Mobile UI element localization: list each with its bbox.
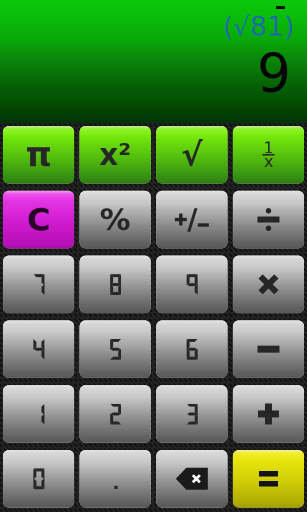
staticText: 1	[263, 139, 273, 157]
staticText: 9	[257, 42, 291, 104]
staticText: .	[114, 466, 116, 492]
button[interactable]: 2	[80, 385, 151, 443]
button[interactable]: 8	[80, 256, 151, 313]
button[interactable]	[233, 385, 304, 443]
button[interactable]: 4	[3, 320, 74, 378]
staticText: 3	[184, 401, 200, 427]
button[interactable]: π	[3, 126, 74, 183]
staticText: 0	[30, 466, 46, 492]
button[interactable]: x²	[80, 126, 151, 183]
staticText: 4	[30, 336, 46, 362]
button[interactable]: √	[156, 126, 227, 183]
staticText: 6	[184, 336, 200, 362]
button[interactable]: 9	[156, 256, 227, 313]
staticText: π	[25, 135, 51, 174]
button[interactable]: 6	[156, 320, 227, 378]
button[interactable]	[233, 320, 304, 378]
staticText: x²	[99, 138, 131, 172]
staticText: 5	[107, 336, 123, 362]
button[interactable]: 1	[3, 385, 74, 443]
button[interactable]: 7	[3, 256, 74, 313]
staticText: C	[27, 201, 50, 238]
staticText: √	[181, 136, 202, 173]
button[interactable]	[233, 191, 304, 248]
staticText: (√81)	[223, 11, 294, 42]
button[interactable]: /	[156, 191, 227, 248]
staticText: 1	[30, 401, 46, 427]
button[interactable]: 0	[3, 450, 74, 507]
button[interactable]: Equals	[233, 450, 304, 507]
staticText: /	[187, 203, 197, 236]
button[interactable]: %	[80, 191, 151, 248]
staticText: %	[100, 202, 131, 237]
button[interactable]: 5	[80, 320, 151, 378]
button[interactable]: 3	[156, 385, 227, 443]
button[interactable]: .	[80, 450, 151, 507]
staticText: x	[264, 152, 273, 171]
button[interactable]: C	[3, 191, 74, 248]
staticText: 7	[30, 271, 46, 297]
button[interactable]: 1	[233, 126, 304, 183]
button[interactable]	[233, 256, 304, 313]
staticText: 9	[184, 271, 200, 297]
staticText: 2	[107, 401, 123, 427]
button[interactable]: Backspace	[156, 450, 227, 507]
staticText: 8	[107, 271, 123, 297]
